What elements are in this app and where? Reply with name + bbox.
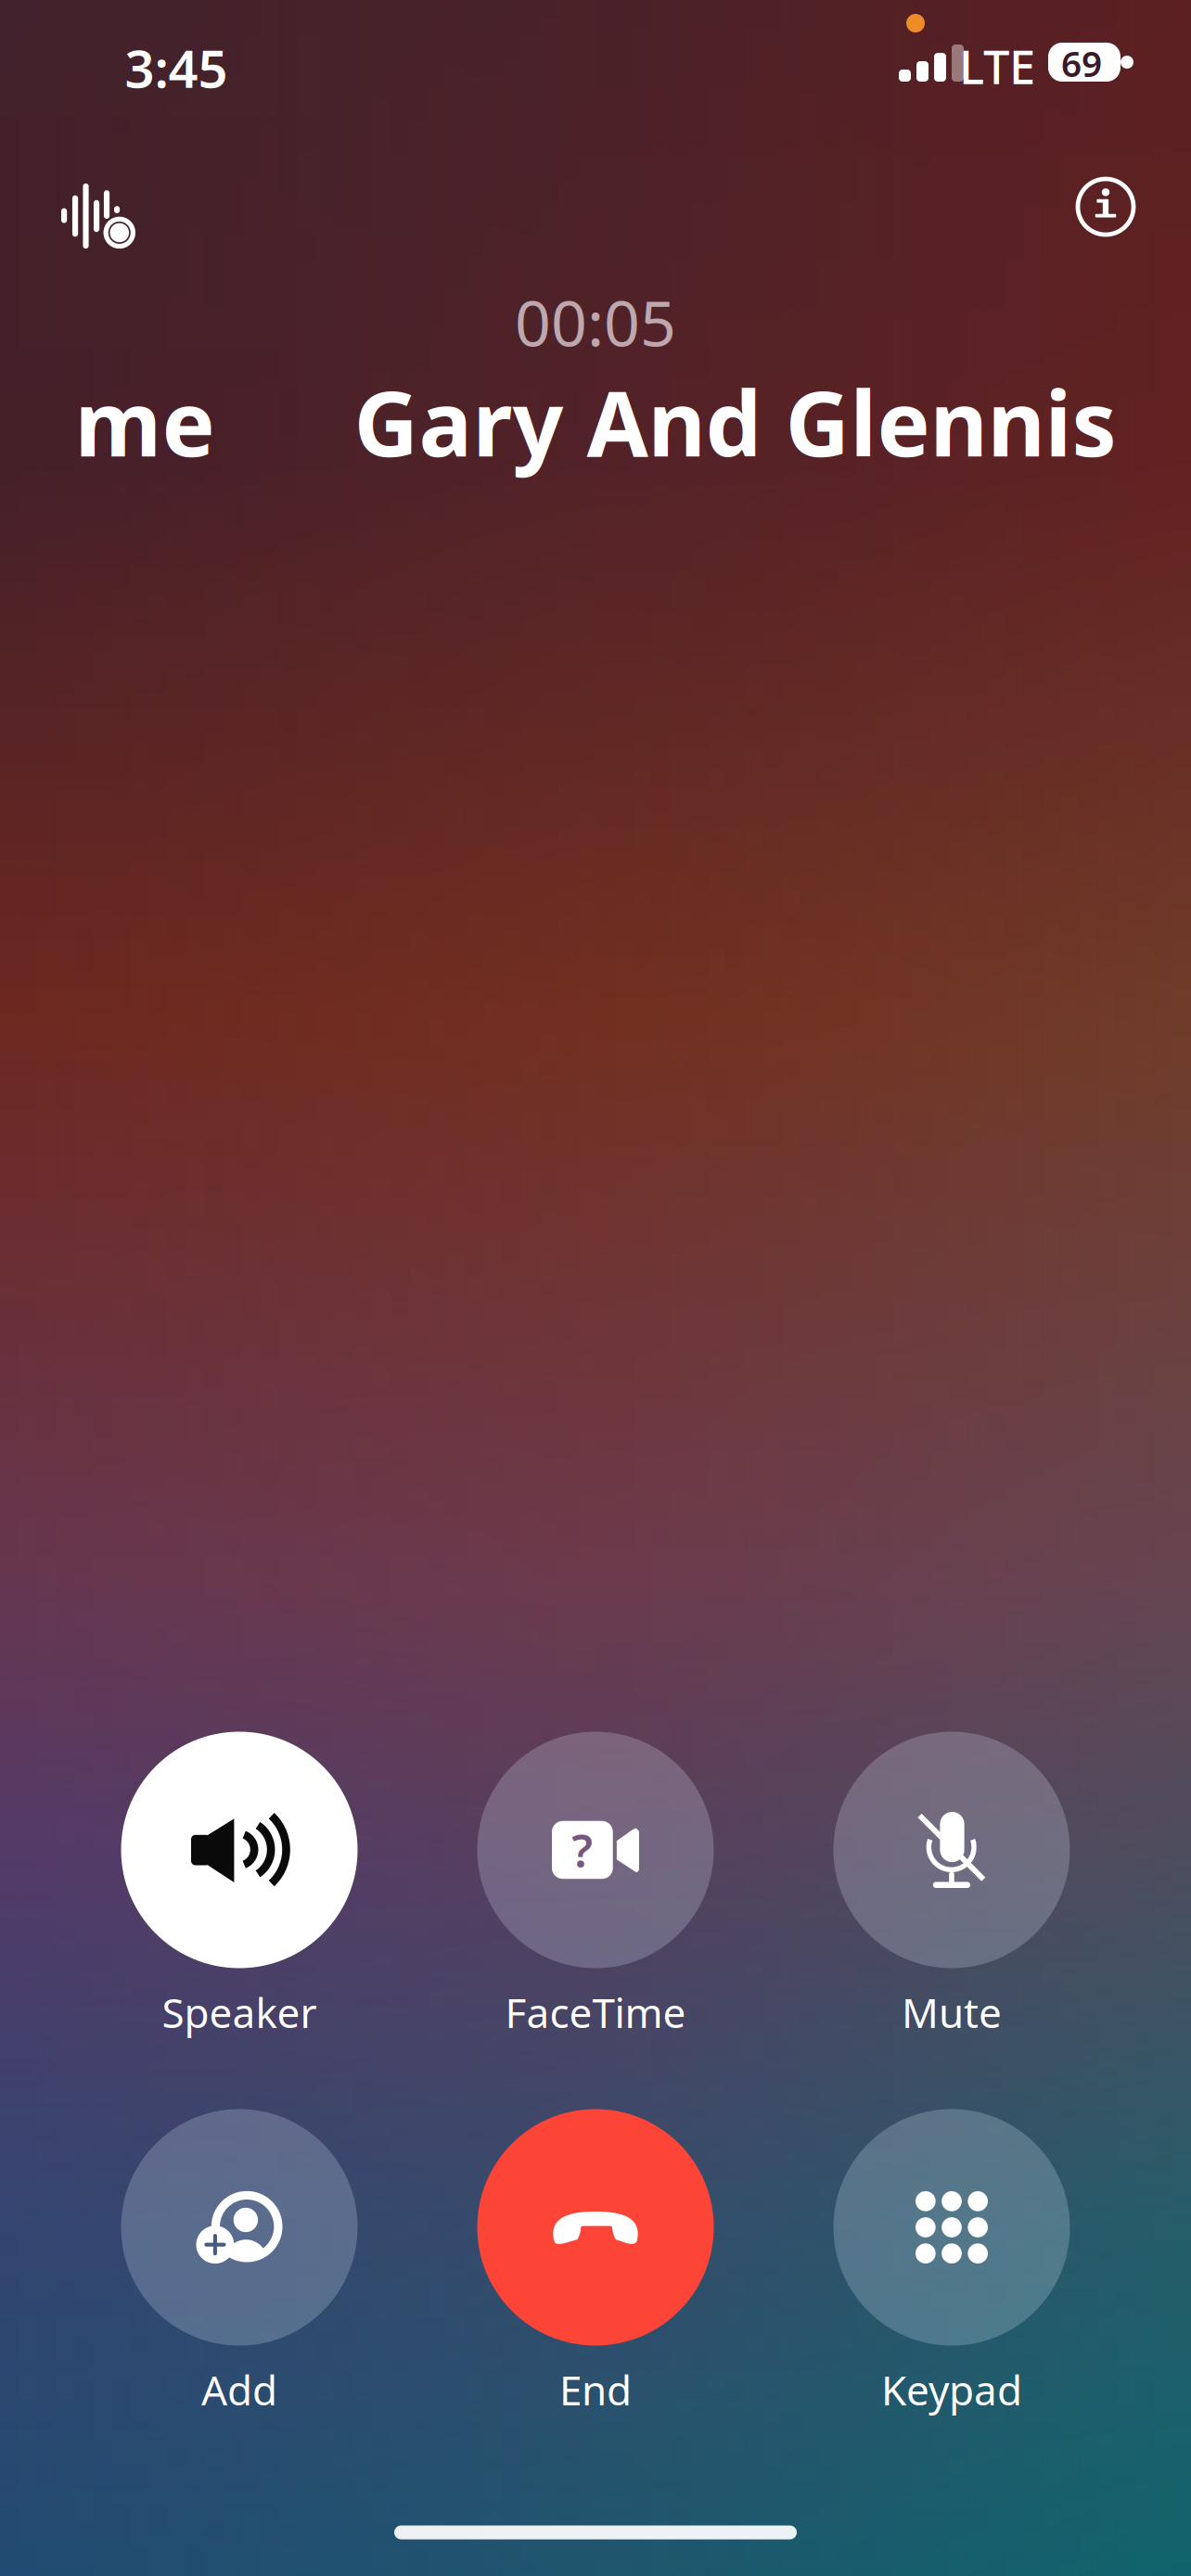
staticText: me Gary And Glennis: [75, 363, 1116, 481]
staticText: Add: [201, 2363, 277, 2417]
staticText: 69: [1061, 39, 1102, 87]
button[interactable]: Add call: [121, 2109, 358, 2346]
button[interactable]: Live Voicemail: [38, 160, 159, 272]
staticText: ?: [572, 1820, 593, 1880]
button[interactable]: Speaker: [121, 1732, 358, 1968]
button[interactable]: Keypad: [833, 2109, 1070, 2346]
button[interactable]: Mute: [833, 1732, 1070, 1968]
staticText: Speaker: [162, 1985, 317, 2039]
staticText: Mute: [902, 1985, 1002, 2039]
staticText: LTE: [959, 35, 1035, 97]
button[interactable]: End call: [477, 2109, 714, 2346]
staticText: 3:45: [125, 33, 228, 102]
staticText: End: [559, 2363, 632, 2417]
staticText: FaceTime: [505, 1985, 686, 2039]
button[interactable]: FaceTime: [477, 1732, 714, 1968]
button[interactable]: Call details: [1050, 151, 1161, 262]
staticText: Keypad: [881, 2363, 1022, 2417]
staticText: 00:05: [515, 280, 676, 364]
